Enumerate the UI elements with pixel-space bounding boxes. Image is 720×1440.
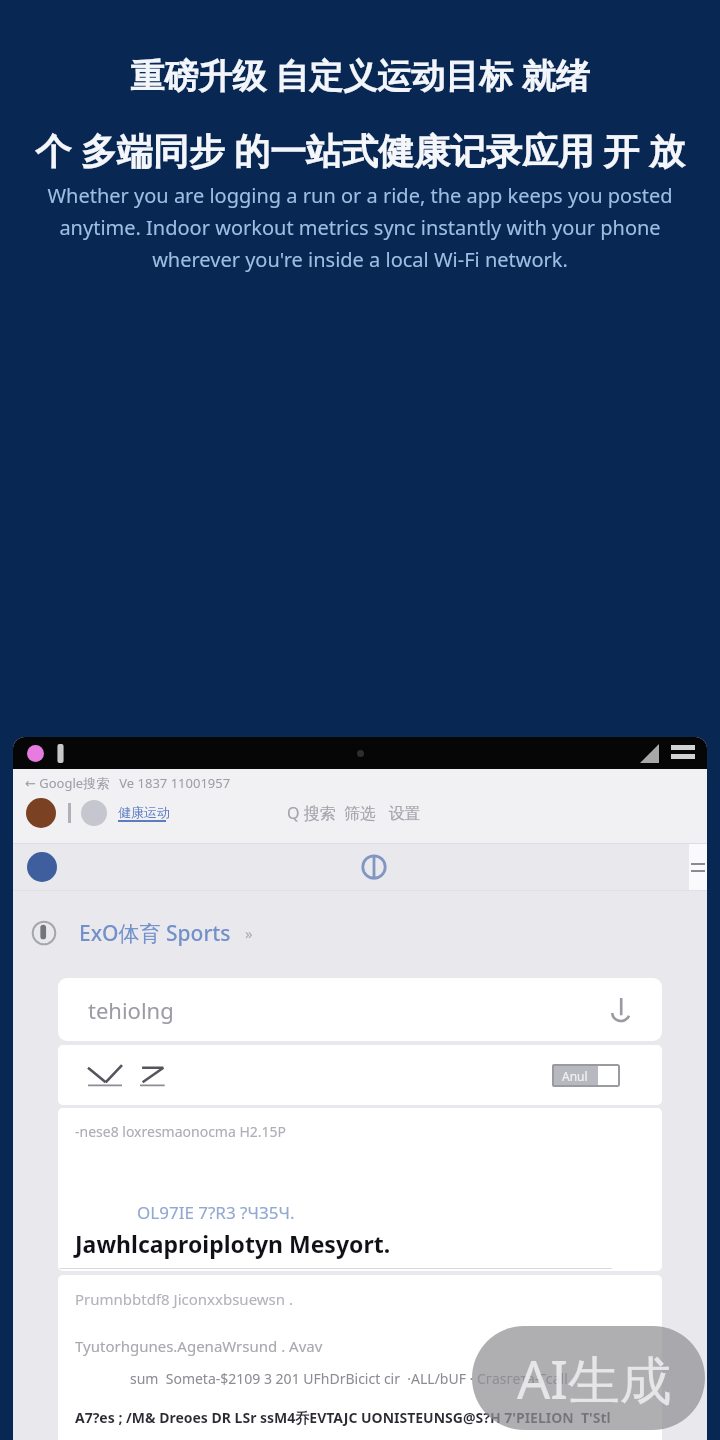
staticText: Prumnbbtdf8 Jiconxxbsuewsn . <box>75 1289 293 1309</box>
staticText: 个 多端同步 的一站式健康记录应用 开 放 <box>35 126 685 175</box>
button[interactable]: Select <box>88 1062 122 1088</box>
staticText: ExO体育 Sports <box>79 919 231 948</box>
button[interactable]: tehiolng <box>58 978 662 1041</box>
staticText: Anul <box>562 1068 588 1084</box>
staticText: Q 搜索 筛选 设置 <box>287 802 421 824</box>
button[interactable]: ExO体育 Sports <box>31 913 707 953</box>
button[interactable]: Info <box>360 853 388 881</box>
staticText: 重磅升级 自定义运动目标 就绪 <box>130 52 590 98</box>
staticText: AI生成 <box>517 1343 672 1414</box>
button[interactable]: Voice search <box>608 998 632 1022</box>
button[interactable]: Sort <box>140 1062 166 1088</box>
staticText: » <box>245 923 253 943</box>
button[interactable]: Profile <box>81 800 107 826</box>
staticText: ← Google搜索 Ve 1837 11001957 <box>25 774 231 792</box>
button[interactable]: Home <box>27 852 57 882</box>
staticText: tehiolng <box>88 995 174 1025</box>
staticText: Jawhlcaproiplotyn Mesyort. <box>75 1228 391 1259</box>
button[interactable]: 健康运动 <box>118 804 170 822</box>
button[interactable]: Account avatar <box>26 798 56 828</box>
staticText: A7?es ; /M& Dreoes DR LSr ssM4乔EVTAJC UO… <box>75 1408 611 1427</box>
button[interactable]: Anul <box>552 1064 620 1087</box>
staticText: Whether you are logging a run or a ride,… <box>47 182 673 273</box>
staticText: 健康运动 <box>118 804 170 820</box>
staticText: Tyutorhgunes.AgenaWrsund . Avav <box>75 1336 323 1356</box>
staticText: -nese8 loxresmaonocma H2.15P <box>75 1122 287 1141</box>
staticText: OL97IE 7?R3 ?ЧЗ5Ч. <box>137 1201 295 1224</box>
staticText: sum Someta-$2109 3 201 UFhDrBicict cir ·… <box>130 1369 568 1388</box>
